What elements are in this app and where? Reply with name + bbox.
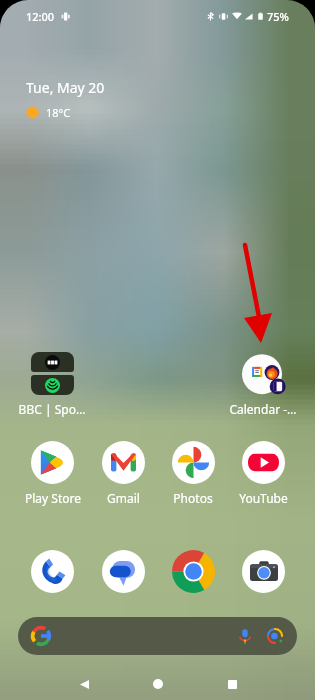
button[interactable]: Recents: [208, 666, 256, 700]
button[interactable]: YouTube: [228, 441, 298, 506]
button[interactable]: Messages: [88, 550, 158, 593]
button[interactable]: Chrome: [158, 550, 228, 593]
staticText: Tue, May 20: [26, 78, 105, 97]
button[interactable]: Back: [60, 666, 108, 700]
button[interactable]: Tue, May 20: [26, 78, 105, 120]
staticText: BBC | Spoti…: [17, 401, 87, 417]
button[interactable]: [18, 617, 297, 655]
staticText: Calendar - …: [228, 401, 298, 417]
button[interactable]: Play Store: [17, 441, 88, 506]
staticText: Play Store: [25, 490, 81, 506]
staticText: Gmail: [107, 490, 140, 506]
button[interactable]: Photos: [158, 441, 228, 506]
button[interactable]: BBC | Spoti…: [17, 352, 87, 417]
staticText: 75%: [267, 9, 289, 24]
staticText: 12:00: [26, 9, 55, 24]
button[interactable]: Camera: [228, 550, 298, 593]
button[interactable]: Calendar - …: [228, 352, 298, 417]
button[interactable]: Phone: [17, 550, 88, 593]
button[interactable]: Gmail: [88, 441, 158, 506]
staticText: Photos: [173, 490, 213, 506]
staticText: 18°C: [46, 105, 71, 120]
button[interactable]: Home: [134, 666, 182, 700]
staticText: YouTube: [239, 490, 288, 506]
